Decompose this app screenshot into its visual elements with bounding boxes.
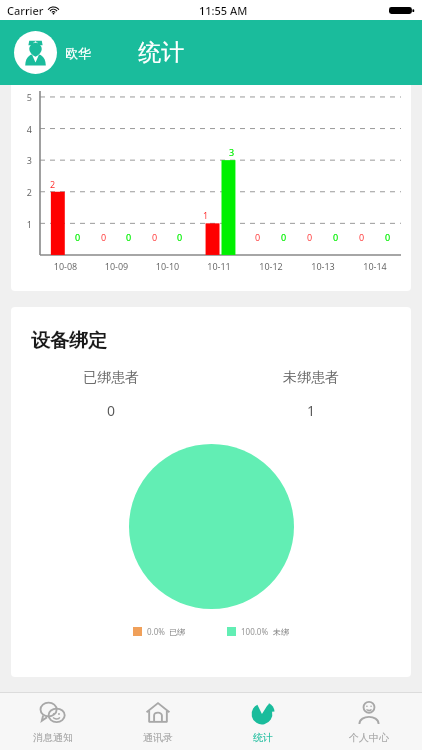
staticText: 0 [255, 231, 261, 243]
staticText: 统计 [138, 38, 184, 67]
staticText: 11:55 AM [199, 3, 248, 18]
staticText: 10-08 [40, 260, 91, 272]
staticText: 已绑患者 [83, 369, 139, 387]
staticText: 10-09 [91, 260, 142, 272]
staticText: 0 [307, 231, 313, 243]
staticText: 0.0% [147, 626, 165, 637]
staticText: 通讯录 [143, 731, 173, 744]
staticText: 10-11 [193, 260, 245, 272]
staticText: 0 [126, 231, 132, 243]
staticText: 0 [385, 231, 391, 243]
staticText: 0 [177, 231, 183, 243]
staticText: 10-10 [142, 260, 193, 272]
staticText: 0 [281, 231, 287, 243]
staticText: 3 [229, 146, 235, 158]
staticText: 0 [359, 231, 365, 243]
staticText: 1 [307, 401, 316, 420]
staticText: 统计 [253, 731, 273, 744]
staticText: 消息通知 [33, 731, 73, 744]
staticText: Carrier [7, 3, 44, 18]
staticText: 设备绑定 [31, 329, 107, 353]
staticText: 4 [11, 123, 32, 135]
staticText: 个人中心 [349, 731, 389, 744]
button[interactable]: 消息通知 [0, 693, 105, 750]
staticText: 5 [11, 91, 32, 103]
staticText: 已绑 [169, 627, 185, 637]
staticText: 0 [75, 231, 81, 243]
staticText: 2 [50, 178, 56, 190]
staticText: 1 [11, 218, 32, 230]
staticText: 1 [203, 209, 209, 221]
staticText: 0 [107, 401, 116, 420]
staticText: 欧华 [65, 45, 91, 61]
button[interactable]: 通讯录 [105, 693, 210, 750]
staticText: 未绑患者 [283, 369, 339, 387]
staticText: 2 [11, 186, 32, 198]
staticText: 0 [333, 231, 339, 243]
staticText: 未绑 [273, 627, 289, 637]
staticText: 10-14 [349, 260, 401, 272]
staticText: 10-13 [297, 260, 349, 272]
staticText: 0 [101, 231, 107, 243]
staticText: 3 [11, 154, 32, 166]
staticText: 0 [152, 231, 158, 243]
staticText: 100.0% [241, 626, 269, 637]
button[interactable]: 统计 [210, 693, 316, 750]
button[interactable]: 个人中心 [316, 693, 422, 750]
button[interactable]: Profile [14, 31, 91, 74]
staticText: 10-12 [245, 260, 297, 272]
